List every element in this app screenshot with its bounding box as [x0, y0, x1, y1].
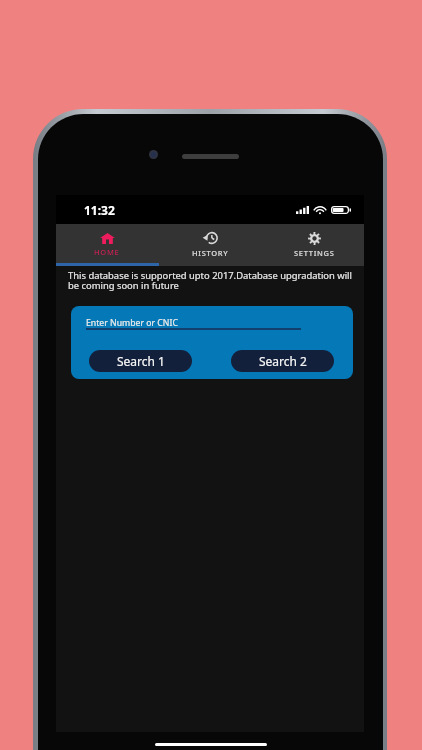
button[interactable]: HISTORY — [158, 224, 261, 263]
staticText: 11:32 — [84, 202, 115, 218]
button[interactable]: HOME — [56, 224, 158, 263]
staticText: HOME — [94, 247, 120, 257]
staticText: This database is supported upto 2017.Dat… — [68, 269, 359, 292]
staticText: SETTINGS — [294, 248, 335, 258]
button[interactable]: Search 2 — [231, 350, 334, 372]
staticText: Search 2 — [259, 353, 307, 369]
button[interactable]: SETTINGS — [261, 224, 364, 263]
button[interactable]: Search 1 — [89, 350, 192, 372]
staticText: Search 1 — [117, 353, 165, 369]
staticText: Enter Number or CNIC — [86, 317, 178, 329]
staticText: HISTORY — [192, 248, 229, 258]
